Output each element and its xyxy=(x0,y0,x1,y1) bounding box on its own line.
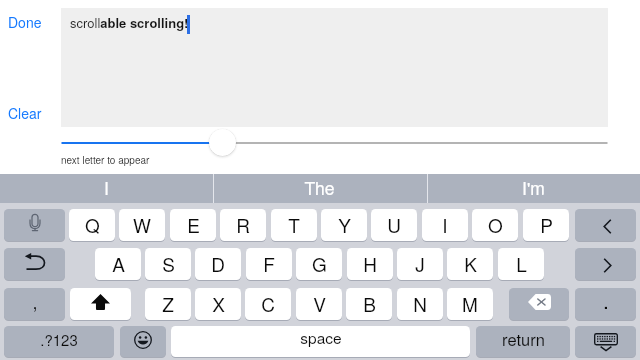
staticText: Y xyxy=(338,211,351,238)
button[interactable]: W xyxy=(119,209,165,241)
staticText: K xyxy=(464,250,477,277)
staticText: The xyxy=(304,175,335,200)
button[interactable]: V xyxy=(296,288,342,320)
button[interactable]: Next field xyxy=(575,248,636,280)
button[interactable]: B xyxy=(346,288,392,320)
button[interactable]: Shift xyxy=(70,288,131,320)
button[interactable]: H xyxy=(347,248,393,280)
staticText: scrollable scrolling! xyxy=(70,13,189,32)
button[interactable]: Backspace xyxy=(509,288,569,320)
button[interactable]: Y xyxy=(321,209,367,241)
staticText: F xyxy=(263,250,275,277)
staticText: next letter to appear xyxy=(61,153,150,167)
button[interactable]: I'm xyxy=(427,174,640,203)
button[interactable]: Q xyxy=(69,209,115,241)
staticText: A xyxy=(112,250,125,277)
staticText: I xyxy=(104,175,109,200)
button[interactable]: Hide keyboard xyxy=(575,326,636,357)
button[interactable]: D xyxy=(195,248,241,280)
staticText: T xyxy=(288,211,300,238)
staticText: . xyxy=(603,288,609,315)
button[interactable]: R xyxy=(220,209,266,241)
button[interactable]: space xyxy=(171,326,470,357)
button[interactable]: Dictation xyxy=(4,209,65,241)
staticText: H xyxy=(363,250,377,277)
staticText: N xyxy=(413,290,427,317)
staticText: J xyxy=(415,250,425,277)
button[interactable]: Z xyxy=(145,288,191,320)
staticText: R xyxy=(236,211,250,238)
button[interactable]: .?123 xyxy=(4,326,114,357)
button[interactable]: P xyxy=(523,209,569,241)
button[interactable]: N xyxy=(397,288,443,320)
button[interactable]: . xyxy=(575,288,636,320)
button[interactable]: C xyxy=(245,288,291,320)
button[interactable]: Done xyxy=(0,11,56,33)
button[interactable]: Emoji xyxy=(120,326,166,357)
staticText: Done xyxy=(8,12,42,32)
button[interactable]: O xyxy=(472,209,518,241)
staticText: S xyxy=(162,250,175,277)
button[interactable]: M xyxy=(447,288,493,320)
button[interactable]: U xyxy=(371,209,417,241)
staticText: W xyxy=(133,211,151,238)
button[interactable]: J xyxy=(397,248,443,280)
staticText: , xyxy=(32,288,38,314)
staticText: X xyxy=(212,290,225,317)
staticText: U xyxy=(387,211,401,238)
button[interactable]: S xyxy=(145,248,191,280)
staticText: space xyxy=(300,326,342,348)
staticText: I xyxy=(442,211,448,238)
button[interactable]: Clear xyxy=(0,102,56,124)
staticText: E xyxy=(187,211,200,238)
button[interactable]: L xyxy=(498,248,544,280)
staticText: L xyxy=(516,250,527,277)
button[interactable]: Undo xyxy=(4,248,65,280)
button[interactable]: F xyxy=(246,248,292,280)
staticText: O xyxy=(488,211,503,238)
button[interactable]: Previous field xyxy=(575,209,636,241)
button[interactable]: return xyxy=(476,326,570,357)
staticText: M xyxy=(462,290,478,317)
staticText: D xyxy=(211,250,225,277)
staticText: G xyxy=(312,250,327,277)
button[interactable]: G xyxy=(296,248,342,280)
button[interactable]: scrollable scrolling! xyxy=(61,8,608,127)
button[interactable]: X xyxy=(195,288,241,320)
staticText: .?123 xyxy=(40,329,78,350)
button[interactable]: I xyxy=(422,209,468,241)
staticText: V xyxy=(313,290,326,317)
button[interactable]: E xyxy=(170,209,216,241)
staticText: return xyxy=(502,327,545,351)
staticText: I'm xyxy=(522,175,545,200)
button[interactable]: I xyxy=(0,174,213,203)
button[interactable]: The xyxy=(213,174,426,203)
button[interactable]: K xyxy=(447,248,493,280)
button[interactable]: Slider handle xyxy=(209,129,236,156)
staticText: Q xyxy=(85,211,100,238)
staticText: Clear xyxy=(8,103,42,123)
button[interactable]: A xyxy=(95,248,141,280)
button[interactable]: , xyxy=(4,288,65,320)
staticText: B xyxy=(363,290,376,317)
staticText: C xyxy=(261,290,275,317)
button[interactable]: T xyxy=(271,209,317,241)
staticText: P xyxy=(540,211,553,238)
staticText: Z xyxy=(162,290,174,317)
